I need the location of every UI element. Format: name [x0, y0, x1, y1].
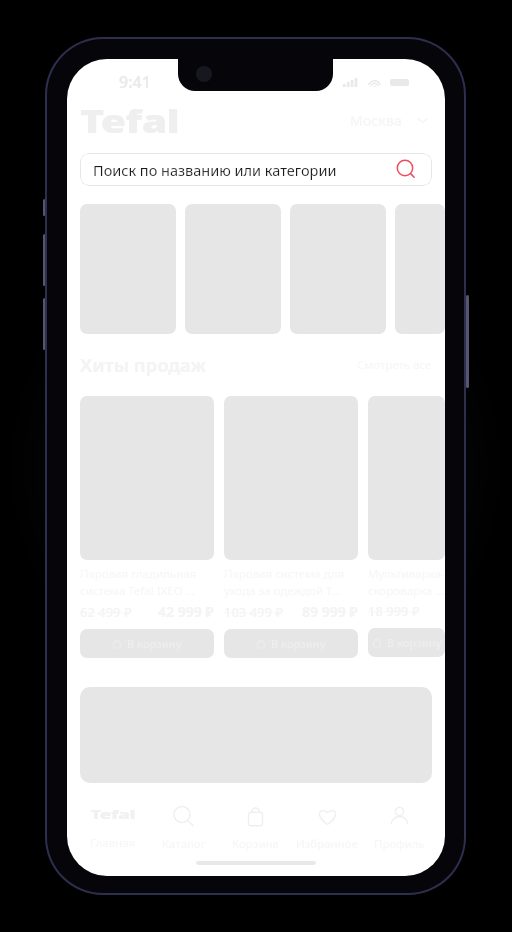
staticText: Tefal [80, 99, 180, 133]
staticText: 18 999 ₽ [368, 602, 420, 620]
button[interactable]: Поиск по названию или категории [80, 153, 432, 186]
staticText: Хиты продаж [80, 352, 207, 377]
other: Каталог [171, 804, 196, 829]
other: Поиск [397, 160, 416, 179]
button[interactable]: В корзину [368, 628, 445, 657]
staticText: Москва [350, 111, 403, 130]
button[interactable]: Москва [350, 111, 428, 130]
other: Профиль [387, 804, 412, 829]
button[interactable]: Tefal [77, 805, 148, 851]
staticText: 42 999 ₽ [158, 602, 214, 621]
button[interactable]: Паровая гладильная система Tefal IXEO ..… [80, 396, 214, 658]
button[interactable]: Паровая система для ухода за одеждой T..… [224, 396, 358, 658]
staticText: 103 499 ₽ [224, 603, 284, 621]
button[interactable]: Мультиварка-скороварка Te... [368, 396, 445, 657]
staticText: Поиск по названию или категории [93, 160, 337, 180]
other: Корзина [243, 804, 268, 829]
staticText: Tefal [90, 806, 135, 823]
other: Избранное [315, 804, 340, 829]
staticText: 89 999 ₽ [302, 602, 358, 621]
staticText: 9:41 [119, 71, 151, 93]
staticText: 62 499 ₽ [80, 603, 132, 621]
